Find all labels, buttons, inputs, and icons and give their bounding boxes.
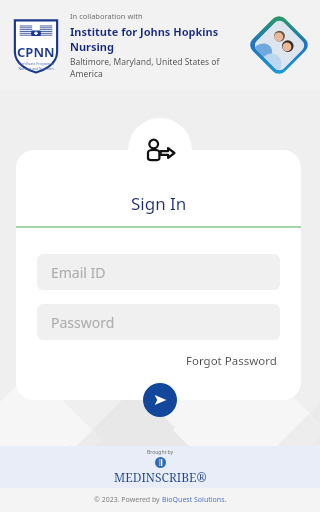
button[interactable]: Forgot Password <box>184 351 279 371</box>
button[interactable]: Password <box>37 304 280 340</box>
button[interactable]: Sign In <box>143 383 177 417</box>
staticText: Baltimore, Maryland, United States of Am… <box>70 56 246 80</box>
staticText: Nursing and Nutrition <box>18 66 54 71</box>
staticText: MEDINSCRIBE® <box>114 469 207 485</box>
button[interactable]: Email ID <box>37 254 280 290</box>
staticText: Forgot Password <box>186 353 277 369</box>
staticText: Email ID <box>51 263 106 282</box>
staticText: Sign In <box>131 192 187 215</box>
staticText: Brought by <box>147 449 174 456</box>
staticText: BioQuest Solutions. <box>162 495 227 505</box>
staticText: Password <box>51 313 115 332</box>
staticText: Certificate Program in <box>19 61 54 66</box>
staticText: Institute for Johns Hopkins Nursing <box>70 24 246 54</box>
staticText: In collaboration with <box>70 11 143 21</box>
staticText: © 2023. Powered by <box>94 495 162 505</box>
staticText: CPNN <box>17 43 55 61</box>
